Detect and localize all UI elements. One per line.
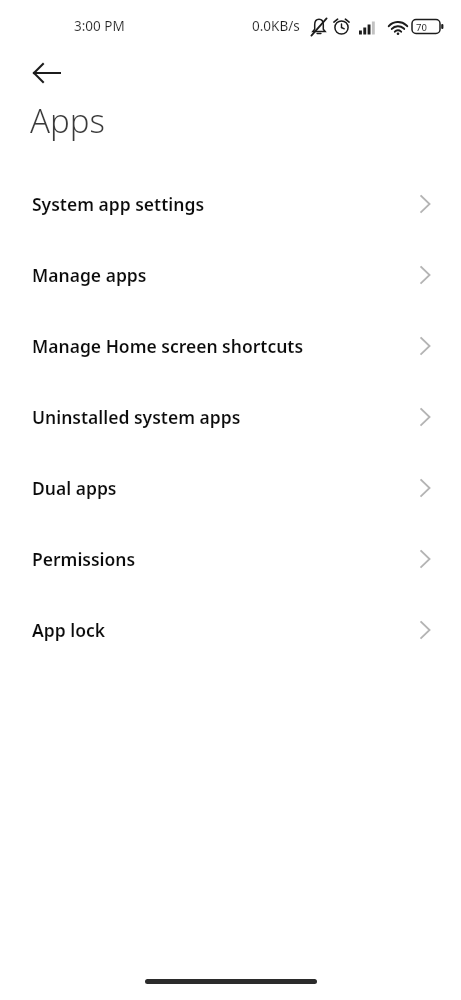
button[interactable]: Manage Home screen shortcuts bbox=[0, 310, 461, 381]
button[interactable]: Permissions bbox=[0, 523, 461, 594]
staticText: 70 bbox=[416, 21, 427, 34]
staticText: Apps bbox=[30, 98, 106, 143]
staticText: Uninstalled system apps bbox=[32, 405, 241, 429]
staticText: App lock bbox=[32, 618, 106, 642]
staticText: Manage Home screen shortcuts bbox=[32, 334, 304, 358]
button[interactable]: Manage apps bbox=[0, 239, 461, 310]
button[interactable]: System app settings bbox=[0, 168, 461, 239]
staticText: 3:00 PM bbox=[74, 17, 125, 35]
button[interactable]: App lock bbox=[0, 594, 461, 665]
staticText: System app settings bbox=[32, 192, 205, 216]
staticText: 0.0KB/s bbox=[252, 17, 300, 35]
button[interactable]: Uninstalled system apps bbox=[0, 381, 461, 452]
button[interactable]: Back bbox=[22, 50, 72, 96]
staticText: Manage apps bbox=[32, 263, 147, 287]
staticText: Permissions bbox=[32, 547, 136, 571]
button[interactable]: Dual apps bbox=[0, 452, 461, 523]
staticText: Dual apps bbox=[32, 476, 117, 500]
